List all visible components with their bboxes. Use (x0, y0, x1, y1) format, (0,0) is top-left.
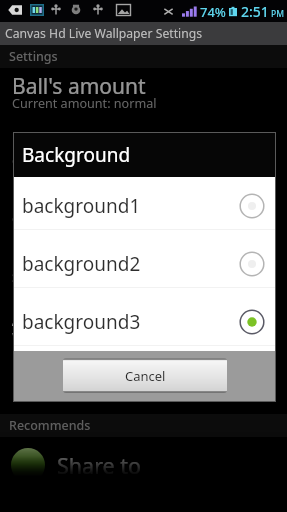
staticText: Ball's amount (12, 72, 146, 101)
staticText: Ball's speed (12, 130, 128, 159)
staticText: 2:51 (241, 2, 269, 21)
staticText: Recommends (9, 417, 91, 434)
staticText: version 1.0 (12, 327, 77, 344)
staticText: About (12, 304, 72, 333)
staticText: Double tap (12, 246, 121, 275)
button[interactable]: background3 (13, 293, 276, 351)
button[interactable]: Cancel (63, 358, 227, 393)
button[interactable]: Share to (0, 439, 287, 491)
staticText: Current amount: normal (12, 95, 157, 112)
staticText: Canvas Hd Live Wallpaper Settings (5, 25, 203, 42)
button[interactable]: Ball's amount (0, 74, 287, 128)
staticText: Settings (9, 48, 58, 65)
staticText: Settings for double tapping (12, 269, 175, 286)
staticText: background2 (22, 251, 141, 277)
staticText: Cancel (125, 367, 166, 385)
button[interactable]: background2 (13, 235, 276, 293)
staticText: Background (22, 142, 131, 168)
staticText: Current background: background3 (12, 211, 217, 228)
staticText: 74% (200, 3, 226, 21)
staticText: Background (12, 188, 132, 217)
staticText: background3 (22, 309, 141, 335)
button[interactable]: Ball's speed (0, 132, 287, 186)
button[interactable]: About (0, 306, 287, 360)
button[interactable]: Double tap (0, 248, 287, 302)
staticText: PM (271, 8, 284, 20)
button[interactable]: background1 (13, 177, 276, 235)
staticText: Rate (12, 362, 57, 391)
staticText: Current speed: normal (12, 153, 146, 170)
staticText: Rate this app (12, 385, 90, 402)
staticText: Share to (57, 451, 142, 480)
button[interactable]: Rate (0, 364, 287, 418)
button[interactable]: Background (0, 190, 287, 244)
staticText: background1 (22, 193, 141, 219)
